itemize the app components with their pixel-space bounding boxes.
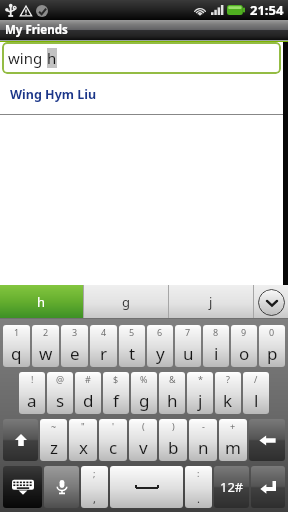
staticText: h (37, 293, 46, 311)
button[interactable]: Wing Hym Liu (0, 86, 283, 114)
staticText: q (11, 342, 22, 365)
staticText: z (50, 436, 58, 459)
staticText: j (198, 389, 203, 412)
button[interactable]: Switch keyboard (3, 466, 42, 508)
staticText: l (254, 389, 259, 412)
staticText: 6 (157, 326, 163, 338)
staticText: h (167, 389, 178, 412)
staticText: b (168, 436, 179, 459)
staticText: $ (113, 373, 119, 385)
button[interactable]: ; (81, 466, 108, 508)
staticText: 12# (220, 478, 244, 496)
button[interactable]: + (219, 419, 247, 461)
staticText: / (254, 373, 258, 385)
staticText: o (239, 342, 250, 365)
staticText: 4 (101, 326, 107, 338)
staticText: 2 (43, 326, 49, 338)
button[interactable]: Enter (251, 466, 285, 508)
button[interactable]: 5 (119, 325, 145, 367)
staticText: 21:54 (250, 1, 284, 19)
button[interactable]: # (75, 372, 101, 414)
staticText: n (198, 436, 209, 459)
button[interactable]: 0 (259, 325, 285, 367)
staticText: ~ (51, 420, 57, 432)
staticText: ? (226, 373, 230, 385)
staticText: r (100, 342, 108, 365)
staticText: f (113, 389, 119, 412)
button[interactable]: @ (47, 372, 73, 414)
staticText: p (267, 342, 278, 365)
staticText: x (79, 436, 88, 459)
staticText: e (70, 342, 80, 365)
button[interactable]: ! (19, 372, 45, 414)
staticText: a (27, 389, 37, 412)
button[interactable]: / (243, 372, 269, 414)
button[interactable]: : (185, 466, 212, 508)
button[interactable]: 6 (147, 325, 173, 367)
button[interactable]: 2 (32, 325, 59, 367)
staticText: c (109, 436, 118, 459)
button[interactable]: ( (129, 419, 157, 461)
button[interactable]: % (131, 372, 157, 414)
staticText: My Friends (5, 22, 68, 38)
staticText: wing (8, 48, 47, 68)
staticText: j (209, 293, 213, 311)
button[interactable]: 3 (61, 325, 88, 367)
staticText: 3 (72, 326, 78, 338)
button[interactable]: 4 (90, 325, 117, 367)
staticText: y (156, 342, 165, 365)
staticText: s (56, 389, 65, 412)
staticText: v (139, 436, 148, 459)
staticText: 8 (213, 326, 219, 338)
staticText: & (169, 373, 176, 385)
button[interactable]: ? (215, 372, 241, 414)
button[interactable]: & (159, 372, 185, 414)
staticText: w (39, 342, 53, 365)
staticText: 7 (185, 326, 191, 338)
button[interactable]: Symbols (214, 466, 249, 508)
button[interactable]: More suggestions (254, 285, 288, 319)
button[interactable]: ~ (40, 419, 67, 461)
button[interactable]: - (189, 419, 217, 461)
staticText: m (225, 436, 241, 459)
button[interactable]: j (169, 285, 253, 319)
button[interactable]: h (0, 285, 83, 319)
staticText: Wing Hym Liu (10, 86, 97, 103)
staticText: 0 (269, 326, 275, 338)
staticText: * (198, 373, 203, 385)
staticText: g (139, 389, 150, 412)
staticText: k (223, 389, 233, 412)
staticText: ! (31, 373, 34, 385)
button[interactable]: 7 (175, 325, 201, 367)
staticText: t (129, 342, 136, 365)
button[interactable]: 8 (203, 325, 229, 367)
staticText: 1 (14, 326, 20, 338)
button[interactable]: g (84, 285, 168, 319)
staticText: . (197, 491, 200, 506)
staticText: ' (112, 420, 115, 432)
button[interactable]: ) (159, 419, 187, 461)
button[interactable]: Backspace (249, 419, 285, 461)
staticText: # (85, 373, 91, 385)
staticText: , (93, 491, 96, 506)
button[interactable]: 9 (231, 325, 257, 367)
button[interactable]: $ (103, 372, 129, 414)
button[interactable]: * (187, 372, 213, 414)
button[interactable]: Space (110, 466, 183, 508)
staticText: 9 (241, 326, 247, 338)
button[interactable]: Voice input (44, 466, 79, 508)
staticText: ; (93, 467, 96, 479)
staticText: + (230, 420, 236, 432)
staticText: " (81, 420, 85, 432)
button[interactable]: Shift (3, 419, 38, 461)
button[interactable]: wing (2, 42, 281, 74)
button[interactable]: ' (99, 419, 127, 461)
button[interactable]: " (69, 419, 97, 461)
button[interactable]: 1 (3, 325, 30, 367)
staticText: h (47, 48, 57, 68)
staticText: u (183, 342, 194, 365)
staticText: i (214, 342, 219, 365)
staticText: : (197, 467, 200, 479)
staticText: g (122, 293, 130, 311)
staticText: % (140, 373, 148, 385)
